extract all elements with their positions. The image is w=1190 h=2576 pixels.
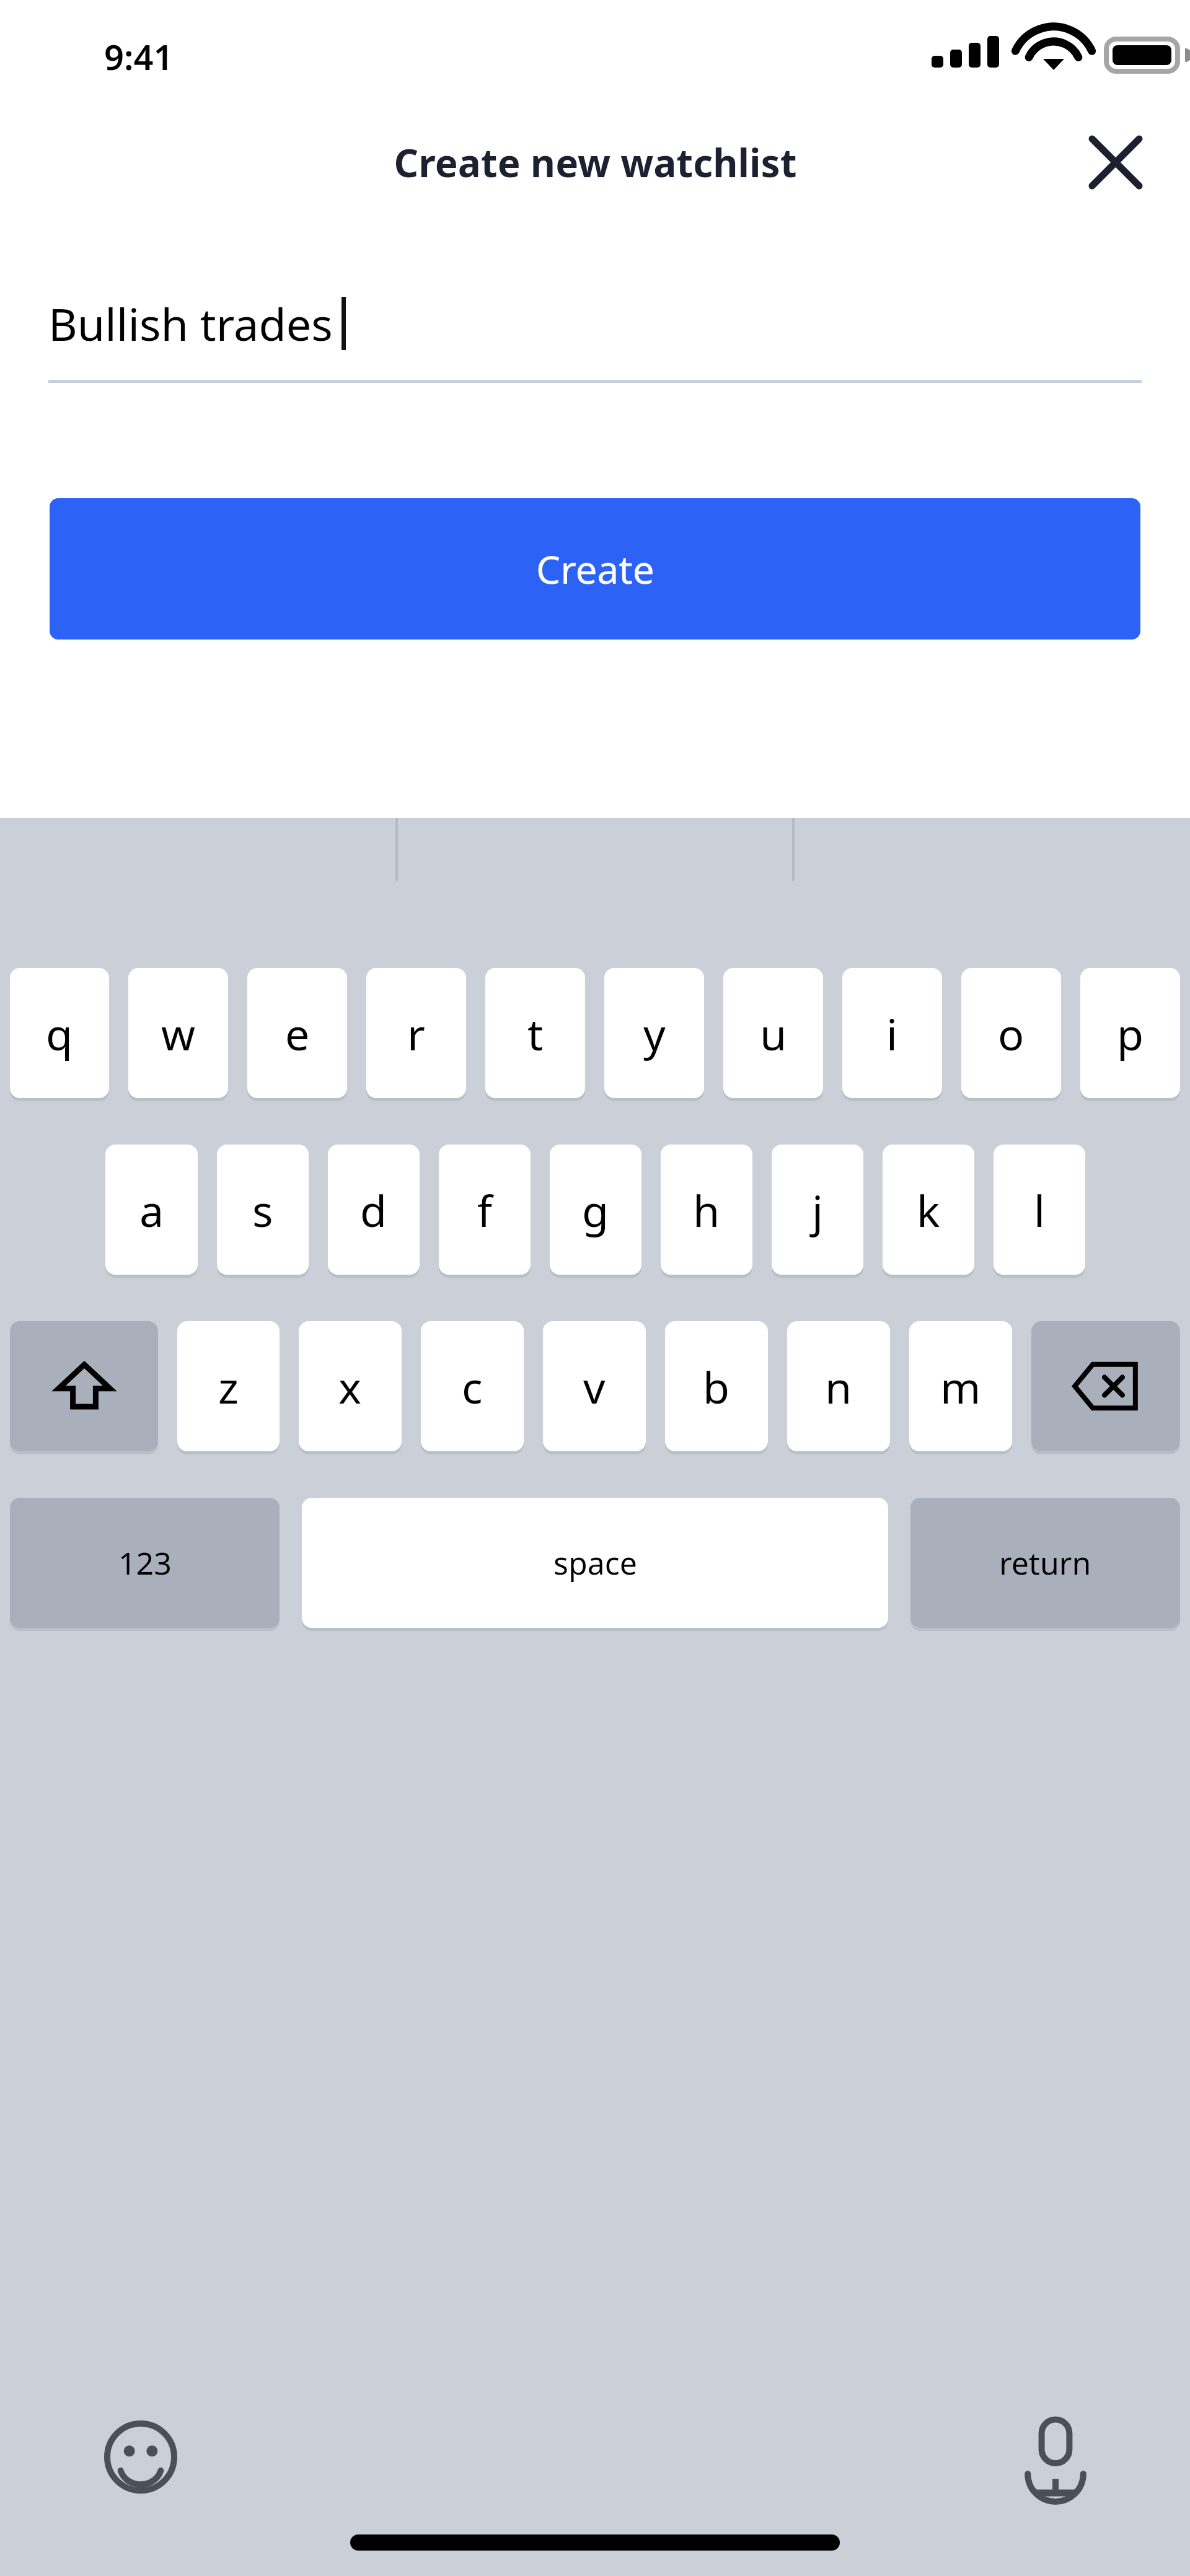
button[interactable]: a [105,1145,198,1275]
button[interactable]: Emoji keyboard [94,2411,187,2503]
staticText: s [252,1180,273,1239]
button[interactable]: h [661,1145,752,1275]
button[interactable]: b [665,1321,768,1451]
button[interactable]: l [994,1145,1085,1275]
staticText: return [999,1542,1091,1584]
button[interactable]: v [543,1321,646,1451]
staticText: p [1117,1004,1144,1063]
button[interactable]: s [217,1145,309,1275]
staticText: o [998,1004,1025,1063]
button[interactable]: 123 [10,1498,280,1628]
button[interactable]: m [909,1321,1012,1451]
staticText: l [1034,1180,1046,1239]
staticText: t [527,1004,544,1063]
staticText: i [886,1004,898,1063]
staticText: Create [536,543,654,595]
staticText: b [703,1357,730,1416]
staticText: Bullish trades [48,293,333,354]
button[interactable]: c [421,1321,524,1451]
staticText: h [693,1180,720,1239]
staticText: a [139,1180,164,1239]
staticText: d [360,1180,387,1239]
button[interactable]: k [883,1145,974,1275]
button[interactable]: space [302,1498,888,1628]
button[interactable]: j [772,1145,863,1275]
button[interactable]: x [299,1321,402,1451]
staticText: q [46,1004,73,1063]
button[interactable]: Bullish trades [48,293,1142,383]
button[interactable]: y [604,968,704,1098]
button[interactable]: Dictation [1009,2411,1102,2503]
button[interactable]: Shift [10,1321,158,1451]
button[interactable]: Backspace [1031,1321,1180,1451]
staticText: Create new watchlist [394,136,797,188]
button[interactable]: z [177,1321,280,1451]
staticText: k [917,1180,940,1239]
button[interactable]: u [723,968,823,1098]
staticText: w [161,1004,196,1063]
button[interactable]: Create [50,498,1140,640]
button[interactable]: o [961,968,1061,1098]
button[interactable]: e [247,968,347,1098]
staticText: m [940,1357,981,1416]
staticText: j [812,1180,824,1239]
button[interactable]: g [550,1145,641,1275]
staticText: c [462,1357,483,1416]
button[interactable]: return [910,1498,1180,1628]
staticText: u [760,1004,787,1063]
staticText: z [218,1357,239,1416]
button[interactable]: r [366,968,466,1098]
staticText: 9:41 [104,33,174,80]
button[interactable]: n [787,1321,890,1451]
staticText: v [583,1357,606,1416]
button[interactable]: p [1080,968,1180,1098]
button[interactable]: t [485,968,585,1098]
staticText: r [407,1004,425,1063]
button[interactable]: i [842,968,942,1098]
button[interactable]: q [10,968,109,1098]
staticText: e [285,1004,310,1063]
staticText: 123 [118,1542,172,1584]
staticText: n [825,1357,852,1416]
button[interactable]: w [128,968,228,1098]
staticText: f [477,1180,493,1239]
staticText: space [553,1542,637,1584]
button[interactable]: d [328,1145,420,1275]
staticText: x [338,1357,362,1416]
staticText: y [643,1004,666,1063]
button[interactable]: f [439,1145,531,1275]
staticText: g [582,1180,609,1239]
button[interactable]: Close [1080,126,1152,198]
